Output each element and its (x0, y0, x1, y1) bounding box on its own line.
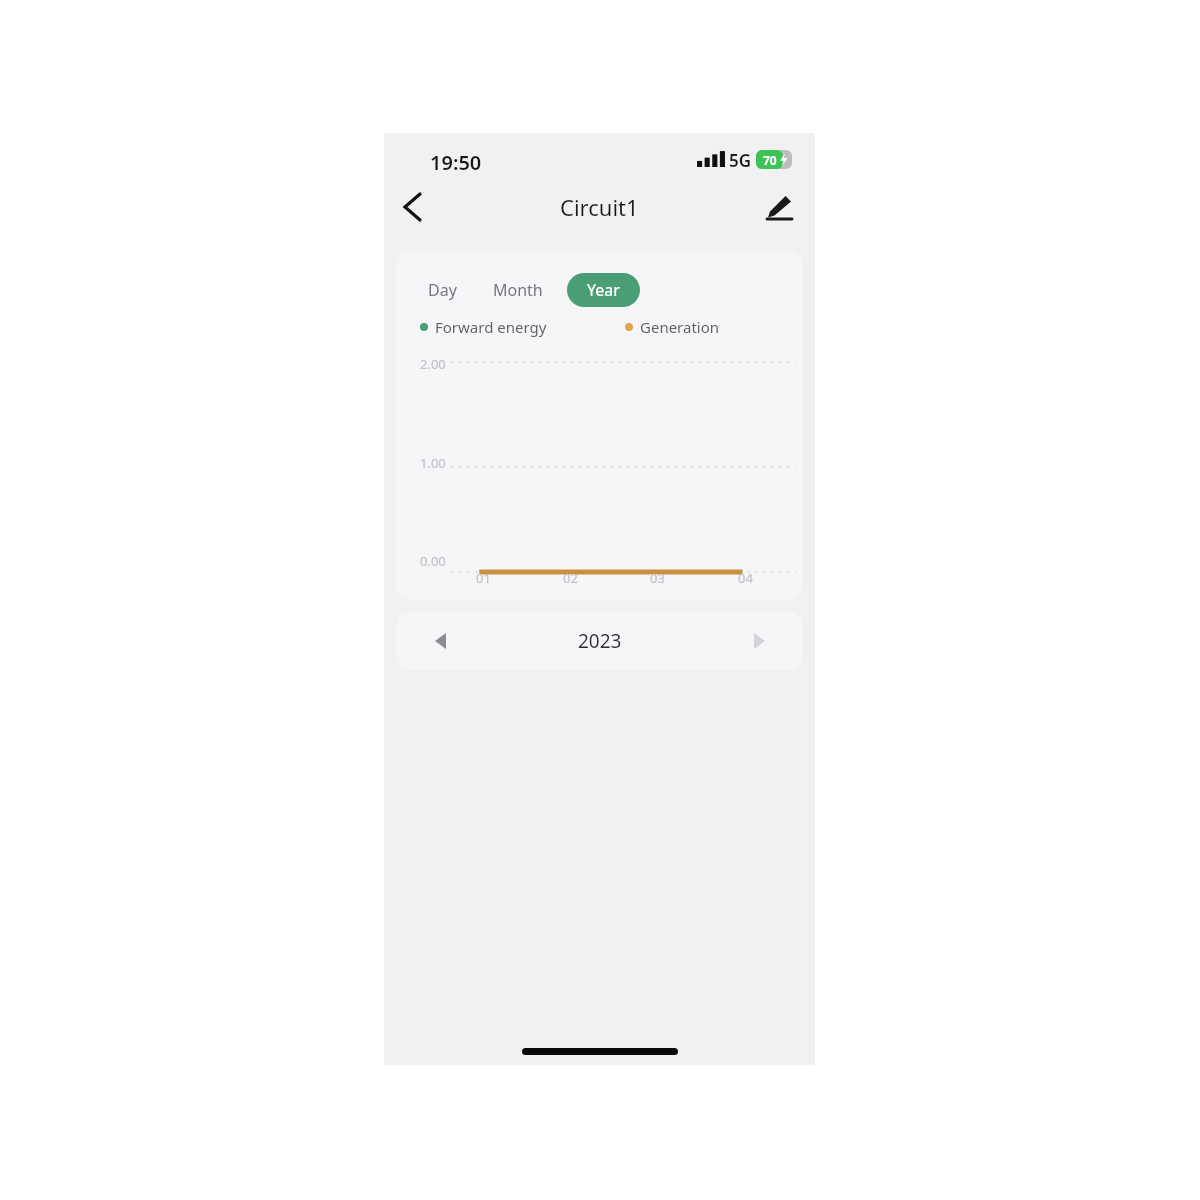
staticText: 03 (650, 569, 665, 587)
staticText: 0.00 (420, 552, 446, 570)
button[interactable]: Next year (735, 612, 783, 670)
staticText: Day (428, 279, 457, 301)
staticText: 01 (476, 569, 491, 587)
staticText: Year (587, 279, 620, 301)
button[interactable]: Day (424, 273, 461, 307)
staticText: 5G (729, 149, 752, 172)
staticText: 02 (563, 569, 578, 587)
button[interactable]: Back (384, 179, 440, 235)
staticText: Month (493, 279, 543, 301)
staticText: 1.00 (420, 454, 446, 472)
staticText: Generation (640, 317, 720, 337)
staticText: 04 (738, 569, 753, 587)
staticText: Circuit1 (560, 192, 639, 222)
button[interactable]: Month (489, 273, 547, 307)
button[interactable]: Edit (751, 179, 807, 235)
button[interactable]: Year (567, 273, 640, 307)
button[interactable]: Previous year (416, 612, 464, 670)
staticText: 2.00 (420, 355, 446, 373)
staticText: Forward energy (435, 317, 547, 337)
staticText: 19:50 (430, 149, 482, 176)
staticText: 70 (763, 152, 777, 168)
staticText: 2023 (578, 628, 622, 654)
